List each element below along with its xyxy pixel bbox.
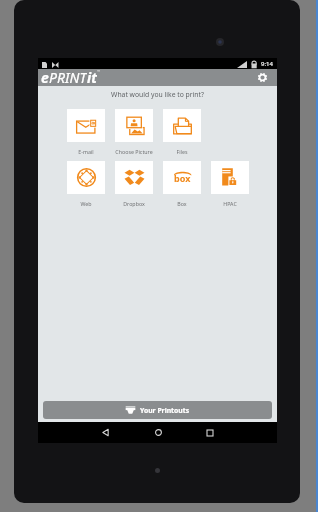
button[interactable]: E-mail: [67, 109, 105, 155]
staticText: Files: [176, 148, 188, 155]
button[interactable]: Web: [67, 161, 105, 207]
button[interactable]: box: [163, 161, 201, 207]
staticText: ™: [97, 69, 101, 74]
staticText: PRINT: [49, 68, 87, 85]
staticText: Box: [177, 200, 187, 207]
staticText: Dropbox: [123, 200, 145, 207]
button[interactable]: Your Printouts: [43, 401, 272, 419]
button[interactable]: Home: [147, 422, 169, 443]
staticText: HPAC: [223, 200, 237, 207]
button[interactable]: Back: [94, 422, 116, 443]
staticText: 9:14: [261, 60, 273, 68]
staticText: box: [174, 172, 191, 184]
staticText: it: [87, 68, 97, 85]
button[interactable]: Settings: [254, 69, 271, 86]
staticText: E-mail: [78, 148, 94, 155]
staticText: Your Printouts: [140, 406, 190, 415]
button[interactable]: Files: [163, 109, 201, 155]
button[interactable]: Recents: [199, 422, 221, 443]
staticText: Choose Picture: [115, 148, 153, 155]
button[interactable]: Choose Picture: [115, 109, 153, 155]
staticText: Web: [80, 200, 92, 207]
staticText: What would you like to print?: [38, 90, 277, 99]
button[interactable]: HPAC: [211, 161, 249, 207]
button[interactable]: Dropbox: [115, 161, 153, 207]
staticText: e: [41, 68, 49, 85]
